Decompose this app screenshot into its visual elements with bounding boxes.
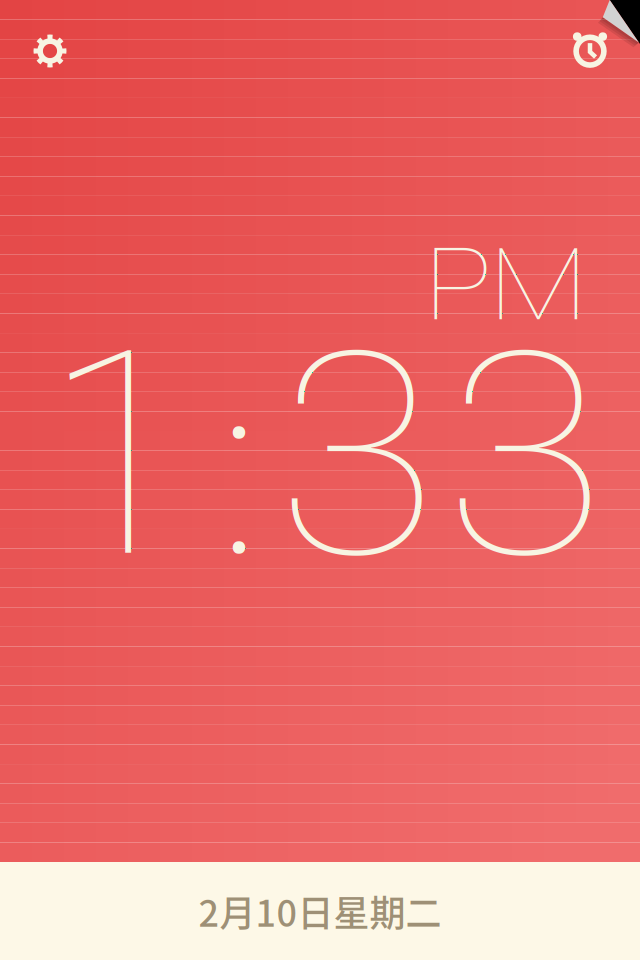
staticText: 2月10日星期二 xyxy=(198,885,441,937)
staticText: PM xyxy=(424,226,588,344)
button[interactable]: Alarms xyxy=(561,18,619,76)
staticText: 1:33 xyxy=(36,293,609,621)
button[interactable]: Settings xyxy=(21,22,79,80)
